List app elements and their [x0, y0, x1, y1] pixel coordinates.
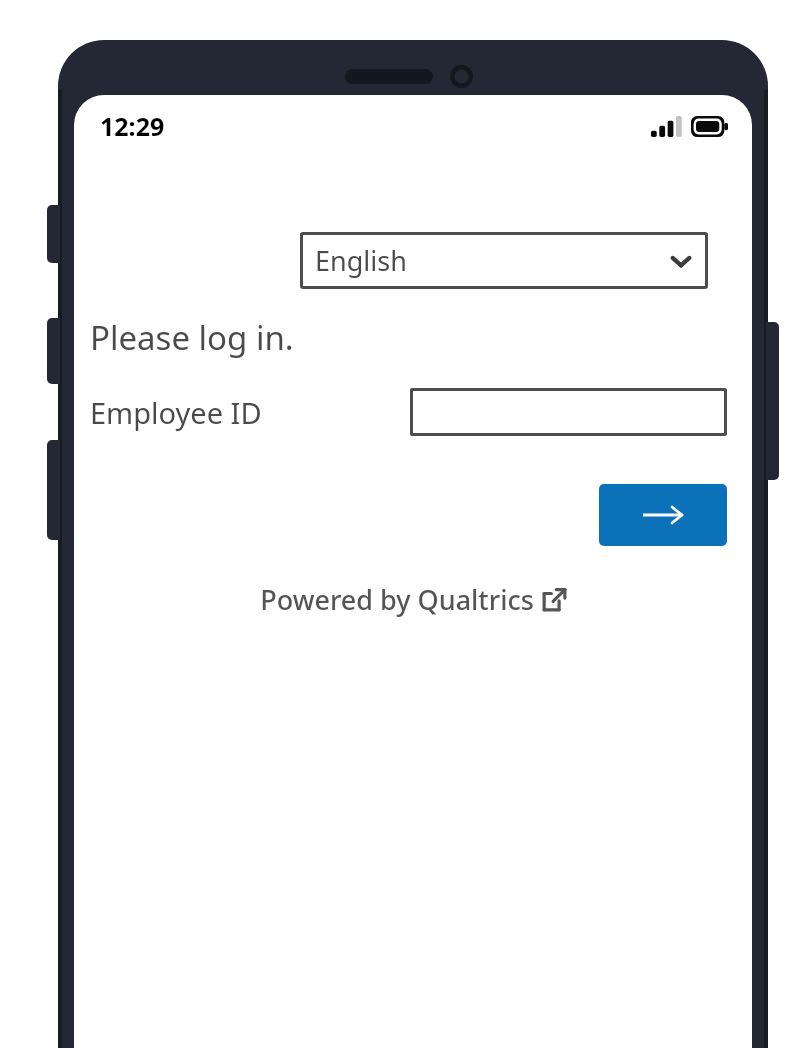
- staticText: English: [315, 242, 407, 279]
- button[interactable]: Submit: [599, 484, 727, 546]
- staticText: 12:29: [100, 109, 165, 143]
- button[interactable]: Employee ID input field: [410, 388, 727, 436]
- staticText: Powered by Qualtrics: [260, 581, 534, 618]
- button[interactable]: English: [300, 232, 708, 289]
- button[interactable]: Powered by Qualtrics: [74, 581, 752, 618]
- staticText: Employee ID: [90, 393, 262, 432]
- staticText: Please log in.: [90, 315, 294, 360]
